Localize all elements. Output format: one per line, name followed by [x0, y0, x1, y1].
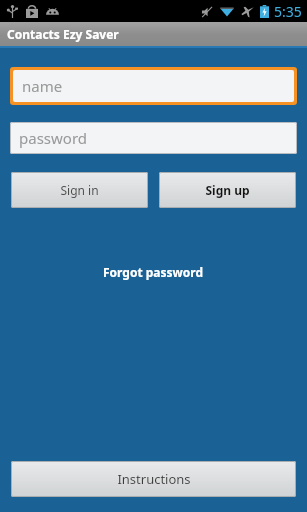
staticText: Contacts Ezy Saver	[7, 26, 119, 42]
button[interactable]: Forgot password	[95, 260, 212, 284]
staticText: password	[19, 128, 87, 148]
staticText: Forgot password	[103, 264, 204, 280]
staticText: Instructions	[117, 470, 191, 488]
staticText: Sign up	[205, 182, 250, 198]
staticText: 5:35	[274, 2, 302, 21]
button[interactable]: Sign up	[159, 172, 296, 208]
button[interactable]: name	[13, 70, 294, 102]
staticText: name	[22, 76, 63, 96]
staticText: Sign in	[60, 182, 99, 198]
button[interactable]: Sign in	[11, 172, 148, 208]
button[interactable]: password	[10, 122, 297, 154]
button[interactable]: Instructions	[11, 461, 296, 497]
